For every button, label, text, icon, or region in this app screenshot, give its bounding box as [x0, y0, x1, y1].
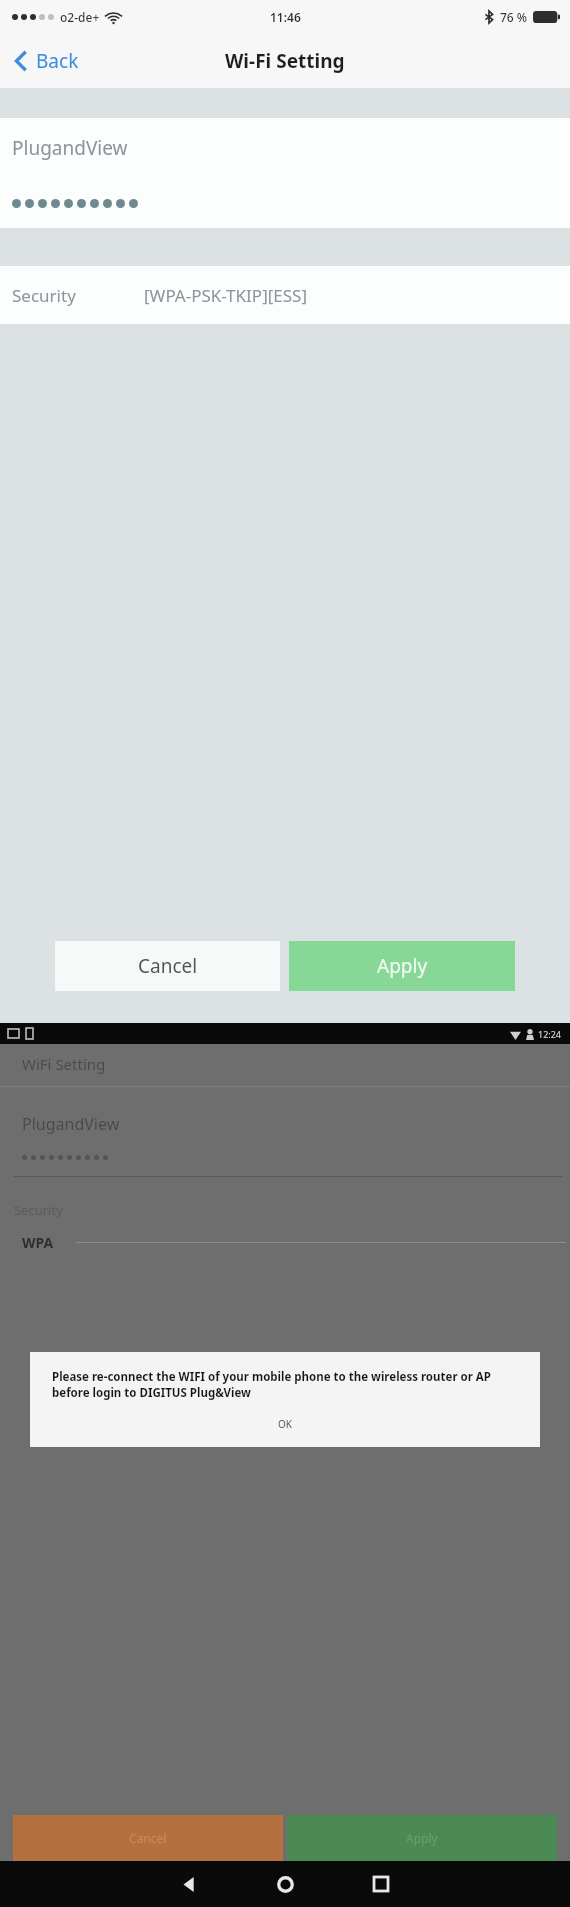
button[interactable]: WPA [0, 1233, 570, 1252]
button[interactable]: Back [0, 40, 95, 82]
staticText: Cancel [129, 1830, 167, 1846]
staticText: WiFi Setting [22, 1054, 106, 1074]
staticText: Please re-connect the WIFI of your mobil… [52, 1369, 522, 1401]
staticText: Security [12, 284, 76, 307]
staticText: Apply [406, 1830, 438, 1846]
button[interactable]: PlugandView [0, 118, 570, 178]
staticText: 76 % [500, 9, 528, 25]
staticText: PlugandView [12, 135, 128, 161]
staticText: 12:24 [538, 1028, 562, 1040]
button[interactable]: Apply [289, 941, 515, 991]
button[interactable]: Security [0, 266, 570, 324]
staticText: o2-de+ [60, 9, 100, 25]
button[interactable]: Cancel [55, 941, 280, 991]
staticText: [WPA-PSK-TKIP][ESS] [144, 284, 308, 307]
staticText: Back [36, 48, 79, 74]
button[interactable]: OK [30, 1401, 540, 1447]
button[interactable]: Back [163, 1861, 215, 1907]
staticText: Security [14, 1201, 63, 1219]
staticText: PlugandView [22, 1113, 120, 1135]
staticText: 11:46 [270, 9, 301, 25]
staticText: Cancel [138, 953, 198, 979]
button[interactable] [0, 178, 570, 228]
staticText: OK [278, 1417, 292, 1431]
button[interactable]: Home [259, 1861, 311, 1907]
button[interactable]: Recent apps [355, 1861, 407, 1907]
staticText: Apply [377, 953, 428, 979]
staticText: Wi-Fi Setting [225, 48, 345, 74]
staticText: WPA [22, 1233, 54, 1252]
